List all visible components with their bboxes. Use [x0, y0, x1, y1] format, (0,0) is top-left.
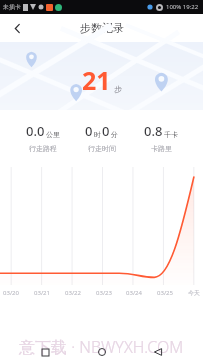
staticText: 03/23 [96, 289, 112, 297]
button[interactable]: Back [146, 344, 170, 360]
staticText: 步 [114, 84, 122, 94]
staticText: 0.0 [26, 122, 45, 140]
button[interactable]: Recents [33, 344, 57, 360]
staticText: 行走时间 [88, 144, 116, 153]
button[interactable]: Home [90, 344, 114, 360]
staticText: 意下载 · NBWYXH.COM [19, 336, 184, 358]
staticText: 未插卡 [3, 3, 21, 11]
staticText: 03/22 [65, 289, 81, 297]
staticText: 100% 19:22 [166, 3, 199, 11]
button[interactable]: Back [0, 14, 34, 42]
staticText: 公里 [46, 130, 60, 139]
staticText: 03/20 [3, 289, 19, 297]
staticText: 03/25 [157, 289, 173, 297]
staticText: 0 [102, 122, 110, 140]
staticText: 卡路里 [151, 144, 172, 153]
staticText: 03/21 [34, 289, 50, 297]
staticText: 步数记录 [80, 21, 124, 35]
staticText: 03/24 [126, 289, 142, 297]
staticText: 时 [94, 130, 101, 139]
staticText: 21 [82, 63, 111, 97]
staticText: 0.8 [144, 122, 163, 140]
staticText: 千卡 [164, 130, 178, 139]
staticText: 0 [85, 122, 93, 140]
staticText: 今天 [188, 289, 200, 297]
staticText: 分 [111, 130, 118, 139]
staticText: 行走路程 [29, 144, 57, 153]
